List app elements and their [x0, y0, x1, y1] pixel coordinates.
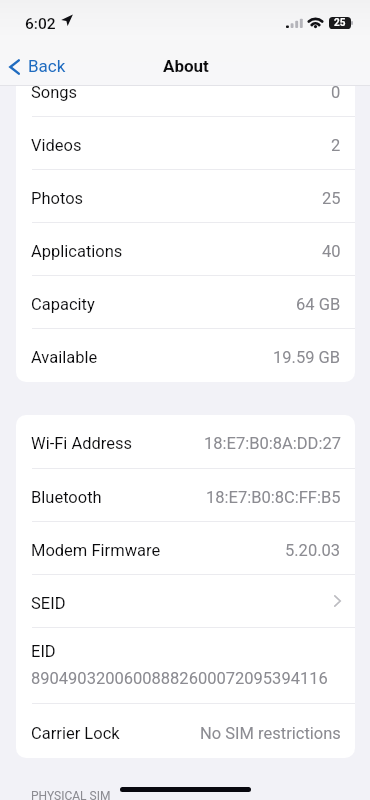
staticText: 18:E7:B0:8C:FF:B5 — [206, 488, 341, 507]
button[interactable]: Bluetooth — [16, 469, 355, 522]
button[interactable]: SEID — [16, 575, 355, 628]
staticText: 2 — [331, 136, 341, 155]
staticText: Capacity — [31, 295, 95, 314]
staticText: Modem Firmware — [31, 541, 161, 560]
staticText: Available — [31, 348, 98, 367]
staticText: 0 — [331, 83, 341, 102]
button[interactable]: Applications — [16, 223, 355, 276]
button[interactable]: EID — [16, 628, 355, 704]
button[interactable]: Capacity — [16, 276, 355, 329]
staticText: SEID — [31, 594, 66, 613]
staticText: Songs — [31, 83, 78, 102]
staticText: About — [163, 56, 209, 76]
staticText: PHYSICAL SIM — [31, 789, 111, 800]
staticText: Applications — [31, 242, 123, 261]
button[interactable]: Photos — [16, 170, 355, 223]
staticText: 19.59 GB — [273, 348, 341, 367]
staticText: No SIM restrictions — [200, 724, 341, 743]
button[interactable]: Available — [16, 329, 355, 382]
staticText: 6:02 — [25, 15, 56, 33]
staticText: 5.20.03 — [285, 541, 341, 560]
staticText: 40 — [322, 242, 341, 261]
button[interactable]: Songs — [16, 64, 355, 117]
button[interactable]: Carrier Lock — [16, 704, 355, 758]
staticText: Bluetooth — [31, 488, 102, 507]
button[interactable]: Back — [0, 53, 76, 79]
staticText: Videos — [31, 136, 82, 155]
staticText: Photos — [31, 189, 84, 208]
staticText: Carrier Lock — [31, 724, 120, 743]
staticText: Back — [28, 56, 66, 76]
button[interactable]: Videos — [16, 117, 355, 170]
staticText: 25 — [322, 189, 341, 208]
button[interactable]: Wi-Fi Address — [16, 415, 355, 469]
staticText: EID — [31, 642, 56, 661]
staticText: 25 — [334, 17, 346, 29]
staticText: Wi-Fi Address — [31, 434, 133, 453]
staticText: 18:E7:B0:8A:DD:27 — [204, 434, 341, 453]
staticText: 64 GB — [296, 295, 341, 314]
staticText: 89049032006008882600072095394116 — [31, 669, 328, 688]
button[interactable]: Modem Firmware — [16, 522, 355, 575]
